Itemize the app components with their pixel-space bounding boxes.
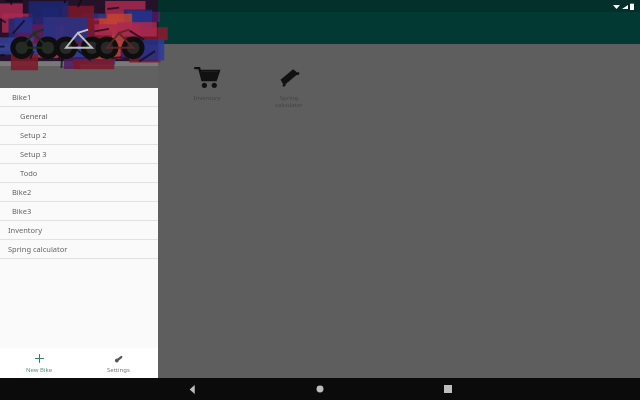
button[interactable]: Todo — [0, 164, 158, 183]
other: Home — [316, 385, 324, 393]
staticText: Inventory — [8, 225, 43, 235]
button[interactable]: Setup 3 — [0, 145, 158, 164]
staticText: Todo — [20, 168, 38, 178]
staticText: Spring calculator — [8, 244, 68, 254]
staticText: Settings — [107, 366, 130, 374]
staticText: New Bike — [26, 366, 53, 374]
staticText: Setup 2 — [20, 130, 47, 140]
staticText: General — [20, 111, 48, 121]
button[interactable]: Spring calculator — [0, 240, 158, 259]
staticText: Inventory — [193, 94, 221, 102]
staticText: Setup 3 — [20, 149, 47, 159]
other: Back — [188, 385, 197, 394]
button[interactable]: Settings — [79, 348, 158, 378]
staticText: Spring calculator — [275, 94, 303, 109]
button[interactable]: Bike2 — [0, 183, 158, 202]
button[interactable]: General — [0, 107, 158, 126]
staticText: Bike2 — [12, 187, 32, 197]
staticText: Bike1 — [12, 92, 32, 102]
button[interactable]: New Bike — [0, 348, 79, 378]
button[interactable]: Bike1 — [0, 88, 158, 107]
button[interactable]: Bike3 — [0, 202, 158, 221]
button[interactable]: Setup 2 — [0, 126, 158, 145]
button[interactable]: Inventory — [180, 60, 234, 106]
button[interactable]: Inventory — [0, 221, 158, 240]
staticText: Bike3 — [12, 206, 32, 216]
button[interactable]: Spring calculator — [262, 60, 316, 113]
